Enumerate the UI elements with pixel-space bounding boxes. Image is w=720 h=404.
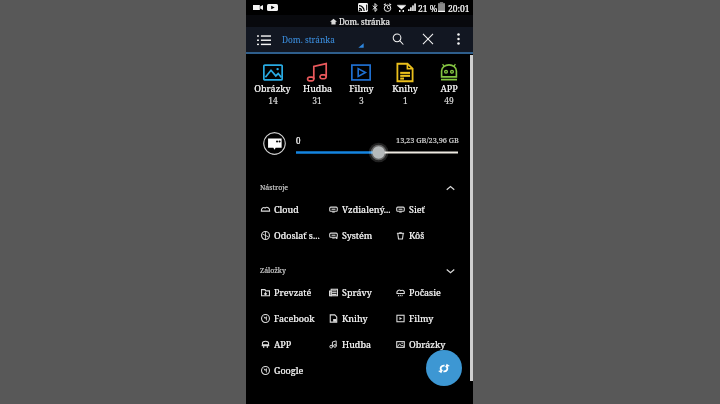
staticText: Hudba [303, 82, 332, 94]
staticText: Obrázky [409, 338, 446, 350]
staticText: Filmy [409, 312, 434, 324]
staticText: Dom. stránka [339, 16, 390, 27]
button[interactable]: Knihy [383, 63, 427, 107]
staticText: Knihy [392, 82, 418, 94]
button[interactable]: Počasie [396, 282, 463, 302]
staticText: 31 [312, 95, 322, 107]
staticText: 21 % [418, 3, 438, 15]
button[interactable]: Hudba [295, 63, 339, 107]
button[interactable]: Nástroje [246, 180, 473, 196]
button[interactable]: Search [385, 27, 411, 51]
staticText: Systém [342, 229, 373, 241]
staticText: Facebook [274, 312, 315, 324]
staticText: 49 [444, 95, 454, 107]
staticText: APP [274, 338, 292, 350]
staticText: Prevzaté [274, 286, 312, 298]
staticText: 13,23 GB/23,96 GB [396, 135, 459, 145]
button[interactable]: Hudba [329, 334, 396, 354]
staticText: Vzdialený... [342, 203, 391, 215]
staticText: Knihy [342, 312, 368, 324]
button[interactable]: Menu [251, 28, 277, 51]
button[interactable]: Storage [263, 132, 286, 155]
staticText: Správy [342, 286, 372, 298]
button[interactable]: Kôš [396, 225, 463, 245]
staticText: Google [274, 364, 304, 376]
button[interactable]: Odoslať s... [261, 225, 329, 245]
staticText: 3 [359, 95, 364, 107]
staticText: Záložky [260, 266, 286, 276]
button[interactable]: Systém [329, 225, 396, 245]
button[interactable]: Obrázky [250, 63, 295, 107]
staticText: Odoslať s... [274, 229, 320, 241]
button[interactable]: Close [415, 27, 441, 51]
button[interactable]: Storage usage [296, 146, 458, 159]
button[interactable]: Refresh [426, 350, 462, 386]
staticText: Sieť [409, 203, 425, 215]
button[interactable]: Sieť [396, 199, 463, 219]
button[interactable]: Prevzaté [261, 282, 329, 302]
staticText: Nástroje [260, 183, 289, 193]
staticText: APP [440, 82, 458, 94]
button[interactable]: Obrázky [396, 334, 463, 354]
button[interactable]: Vzdialený... [329, 199, 396, 219]
button[interactable]: Záložky [246, 263, 473, 279]
button[interactable]: APP [427, 63, 471, 107]
button[interactable]: Google [261, 360, 329, 380]
button[interactable]: Správy [329, 282, 396, 302]
staticText: 1 [403, 95, 408, 107]
staticText: Filmy [349, 82, 374, 94]
staticText: 14 [268, 95, 278, 107]
staticText: Kôš [409, 229, 425, 241]
staticText: Dom. stránka [282, 34, 335, 45]
button[interactable]: APP [261, 334, 329, 354]
button[interactable]: Filmy [339, 63, 383, 107]
button[interactable]: More options [447, 27, 470, 51]
staticText: Počasie [409, 286, 441, 298]
button[interactable]: Filmy [396, 308, 463, 328]
staticText: Cloud [274, 203, 299, 215]
staticText: 20:01 [448, 3, 470, 15]
staticText: Hudba [342, 338, 371, 350]
button[interactable]: Facebook [261, 308, 329, 328]
button[interactable]: Knihy [329, 308, 396, 328]
staticText: 0 [296, 135, 301, 146]
staticText: Obrázky [254, 82, 291, 94]
button[interactable]: Cloud [261, 199, 329, 219]
